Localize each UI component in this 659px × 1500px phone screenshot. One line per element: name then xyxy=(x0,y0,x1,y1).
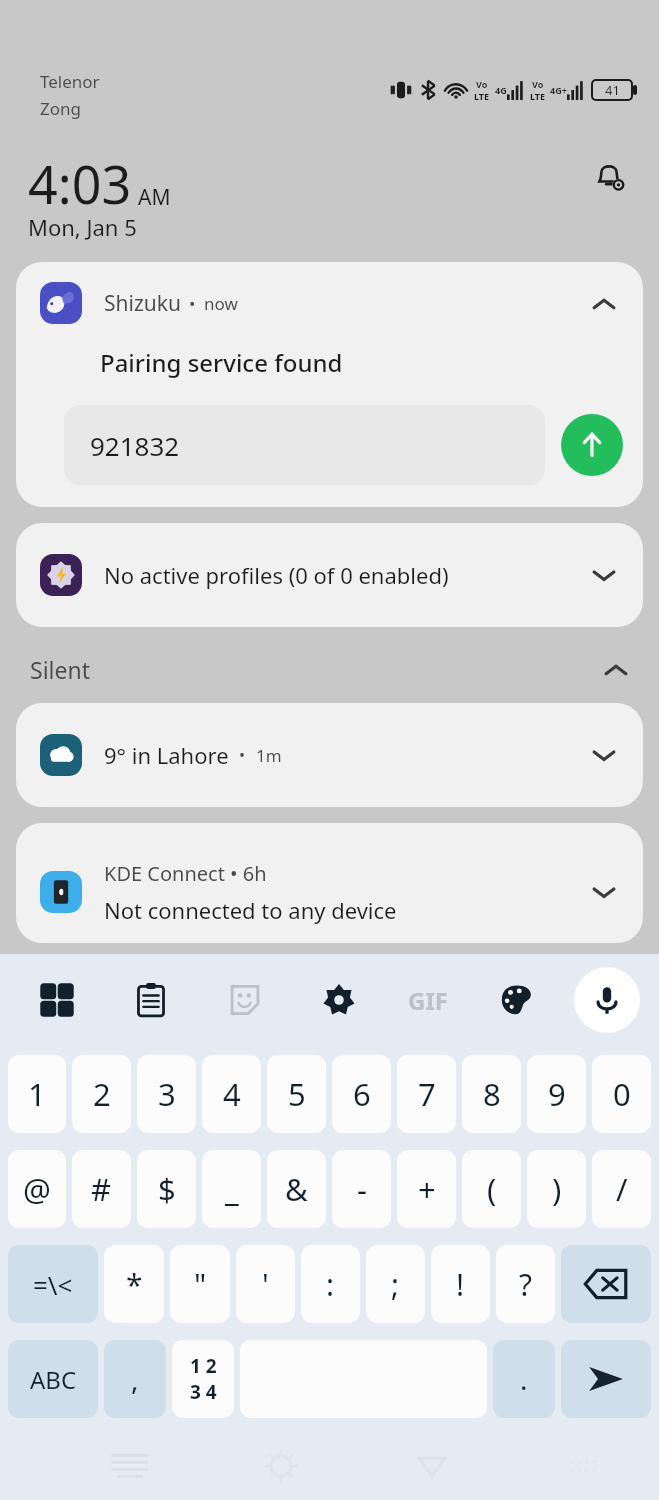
staticText: 1 xyxy=(28,1073,46,1115)
button[interactable]: ) xyxy=(527,1150,586,1228)
button[interactable]: 7 xyxy=(397,1055,456,1133)
button[interactable]: Stickers xyxy=(198,967,292,1033)
button[interactable]: Expand xyxy=(585,556,623,594)
button[interactable]: Recents xyxy=(100,1436,160,1496)
button[interactable]: Numbers xyxy=(172,1340,234,1418)
button[interactable]: 4 xyxy=(202,1055,261,1133)
button[interactable]: 9° in Lahore xyxy=(16,703,643,807)
staticText: 1m xyxy=(256,744,282,767)
staticText: Silent xyxy=(30,654,90,685)
staticText: / xyxy=(616,1168,628,1210)
staticText: & xyxy=(285,1168,308,1210)
button[interactable]: - xyxy=(332,1150,391,1228)
staticText: 3 xyxy=(158,1073,176,1115)
button[interactable]: Voice input xyxy=(574,967,640,1033)
staticText: ! xyxy=(456,1264,465,1305)
staticText: 5 xyxy=(288,1073,306,1115)
button[interactable]: / xyxy=(592,1150,651,1228)
staticText: • xyxy=(189,292,196,315)
staticText: Zong xyxy=(40,97,81,120)
staticText: ) xyxy=(552,1168,562,1210)
staticText: 9° in Lahore xyxy=(104,740,229,770)
button[interactable]: * xyxy=(104,1245,164,1323)
button[interactable]: 0 xyxy=(592,1055,651,1133)
button[interactable]: Clipboard xyxy=(104,967,198,1033)
button[interactable]: 921832 xyxy=(64,405,545,485)
button[interactable]: + xyxy=(397,1150,456,1228)
button[interactable]: Notification settings xyxy=(585,152,633,200)
staticText: Mon, Jan 5 xyxy=(28,212,137,242)
button[interactable]: 5 xyxy=(267,1055,326,1133)
staticText: 4G xyxy=(495,84,507,96)
button[interactable]: Shizuku xyxy=(16,262,643,507)
button[interactable]: Expand xyxy=(585,736,623,774)
staticText: * xyxy=(126,1264,143,1305)
staticText: Shizuku xyxy=(104,289,181,318)
button[interactable]: KDE Connect • 6h xyxy=(16,823,643,943)
button[interactable]: Send xyxy=(561,1340,651,1418)
button[interactable]: No active profiles (0 of 0 enabled) xyxy=(16,523,643,627)
button[interactable]: & xyxy=(267,1150,326,1228)
staticText: @ xyxy=(23,1168,51,1210)
staticText: • xyxy=(239,744,246,766)
button[interactable]: Collapse xyxy=(585,284,623,322)
staticText: Vo xyxy=(476,78,488,90)
button[interactable]: : xyxy=(301,1245,360,1323)
button[interactable]: 3 xyxy=(137,1055,196,1133)
button[interactable]: @ xyxy=(8,1150,66,1228)
button[interactable]: $ xyxy=(137,1150,196,1228)
button[interactable]: 1 xyxy=(8,1055,66,1133)
button[interactable]: ( xyxy=(462,1150,521,1228)
button[interactable]: # xyxy=(72,1150,131,1228)
staticText: , xyxy=(131,1360,139,1398)
button[interactable]: _ xyxy=(202,1150,261,1228)
button[interactable]: ABC xyxy=(8,1340,98,1418)
staticText: Not connected to any device xyxy=(104,895,397,925)
button[interactable]: Settings xyxy=(292,967,386,1033)
staticText: =\< xyxy=(33,1267,73,1302)
button[interactable]: ? xyxy=(496,1245,555,1323)
button[interactable]: Apps xyxy=(10,967,104,1033)
button[interactable]: Backspace xyxy=(561,1245,651,1323)
button[interactable]: Expand xyxy=(585,873,623,911)
staticText: 0 xyxy=(613,1073,631,1115)
button[interactable]: ' xyxy=(236,1245,295,1323)
staticText: LTE xyxy=(474,90,490,102)
staticText: GIF xyxy=(408,984,448,1017)
staticText: KDE Connect • 6h xyxy=(104,860,267,887)
staticText: 6 xyxy=(353,1073,371,1115)
staticText: Pairing service found xyxy=(100,346,343,379)
button[interactable]: 2 xyxy=(72,1055,131,1133)
button[interactable]: 9 xyxy=(527,1055,586,1133)
button[interactable]: ; xyxy=(366,1245,425,1323)
button[interactable]: ! xyxy=(431,1245,490,1323)
button[interactable]: Themes xyxy=(470,967,564,1033)
button[interactable]: " xyxy=(170,1245,230,1323)
staticText: 921832 xyxy=(90,428,180,463)
staticText: : xyxy=(326,1264,335,1305)
staticText: 8 xyxy=(483,1073,501,1115)
staticText: 3 4 xyxy=(190,1379,217,1405)
staticText: " xyxy=(194,1264,207,1305)
button[interactable]: , xyxy=(104,1340,166,1418)
staticText: ? xyxy=(519,1264,533,1305)
staticText: No active profiles (0 of 0 enabled) xyxy=(104,560,449,590)
button[interactable]: . xyxy=(493,1340,555,1418)
button[interactable]: Silent xyxy=(30,649,629,689)
button[interactable]: 6 xyxy=(332,1055,391,1133)
button[interactable]: GIF xyxy=(386,970,470,1030)
staticText: . xyxy=(520,1360,528,1398)
staticText: - xyxy=(357,1168,367,1210)
staticText: Vo xyxy=(532,78,544,90)
staticText: 7 xyxy=(418,1073,436,1115)
button[interactable]: Send xyxy=(561,414,623,476)
staticText: ' xyxy=(262,1264,269,1305)
button[interactable]: =\< xyxy=(8,1245,98,1323)
button[interactable]: 8 xyxy=(462,1055,521,1133)
staticText: ; xyxy=(391,1264,400,1305)
staticText: ( xyxy=(487,1168,497,1210)
